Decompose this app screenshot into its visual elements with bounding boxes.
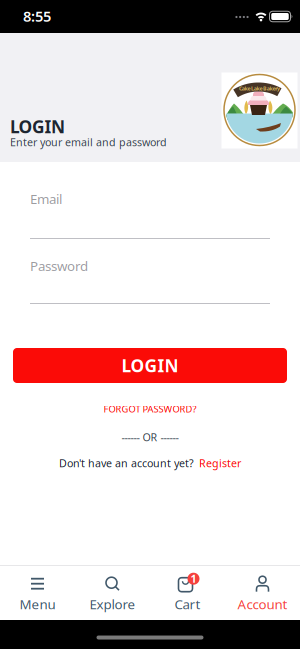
staticText: Explore [89,595,135,613]
button[interactable]: LOGIN [13,348,287,383]
staticText: Account [237,595,287,613]
staticText: LOGIN [10,115,65,138]
staticText: LOGIN [121,354,178,377]
staticText: Don't have an account yet? [59,456,194,470]
button[interactable]: Explore [75,575,150,613]
staticText: 8:55 [23,6,51,26]
staticText: Enter your email and password [10,135,167,149]
staticText: Menu [19,595,55,613]
button[interactable]: FORGOT PASSWORD? [83,397,216,421]
button[interactable]: Menu [0,575,75,613]
staticText: ------ OR ------ [121,430,178,444]
button[interactable]: Email [0,162,300,242]
button[interactable]: Password [0,242,300,307]
staticText: Password [30,257,88,275]
staticText: Email [30,190,62,208]
staticText: Register [199,456,241,470]
staticText: Cart [174,595,200,613]
staticText: 1 [190,572,196,586]
button[interactable]: Account [225,575,300,613]
button[interactable]: Register [199,456,241,470]
button[interactable]: 1 [150,575,225,613]
staticText: FORGOT PASSWORD? [103,403,196,415]
staticText: Cake Lake Bakery [239,85,280,92]
